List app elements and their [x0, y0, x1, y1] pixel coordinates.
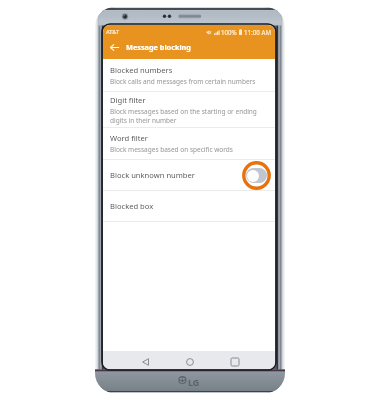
button[interactable]: Block unknown number — [103, 160, 275, 190]
button[interactable]: Home — [179, 351, 201, 369]
button[interactable]: Blocked box — [103, 191, 275, 221]
staticText: 11:00 AM — [244, 28, 271, 36]
staticText: Block messages based on specific words — [110, 145, 233, 154]
staticText: Block unknown number — [110, 170, 195, 180]
button[interactable]: Word filter — [103, 128, 275, 159]
staticText: Word filter — [110, 133, 148, 143]
staticText: Digit filter — [110, 95, 146, 105]
button[interactable]: Back — [134, 351, 156, 369]
staticText: Block calls and messages from certain nu… — [110, 77, 256, 86]
staticText: Message blocking — [126, 42, 191, 52]
staticText: Blocked numbers — [110, 65, 173, 75]
button[interactable]: Recent apps — [224, 351, 246, 369]
staticText: AT&T — [106, 28, 120, 36]
staticText: 100% — [221, 28, 237, 36]
button[interactable]: Back — [106, 39, 122, 55]
button[interactable]: Digit filter — [103, 92, 275, 127]
staticText: Blocked box — [110, 201, 154, 211]
button[interactable]: Blocked numbers — [103, 59, 275, 91]
staticText: Block messages based on the starting or … — [110, 107, 261, 125]
staticText: LG — [188, 376, 200, 388]
